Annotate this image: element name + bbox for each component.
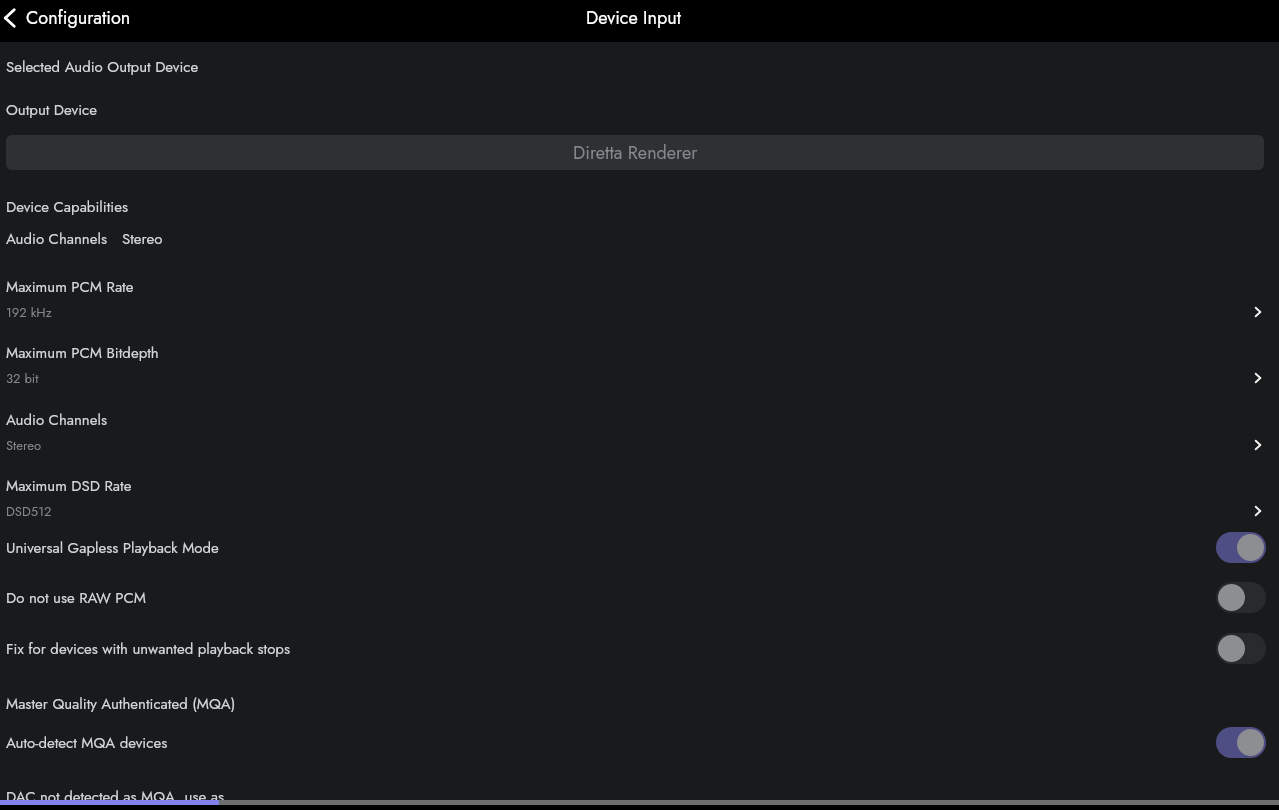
staticText: DSD512 (6, 502, 52, 521)
staticText: Selected Audio Output Device (6, 56, 199, 78)
staticText: Output Device (6, 99, 97, 121)
staticText: DAC not detected as MQA, use as (6, 786, 224, 808)
staticText: 192 kHz (6, 303, 52, 322)
staticText: Device Capabilities (6, 196, 128, 218)
staticText: Fix for devices with unwanted playback s… (6, 638, 290, 660)
staticText: Maximum PCM Bitdepth (6, 342, 159, 364)
button[interactable]: Enabled (1216, 727, 1266, 758)
button[interactable]: Do not use RAW PCM (0, 575, 1279, 619)
staticText: Stereo (122, 228, 163, 250)
button[interactable]: Universal Gapless Playback Mode (0, 525, 1279, 569)
staticText: Maximum PCM Rate (6, 276, 134, 298)
button[interactable]: Diretta Renderer (6, 135, 1264, 170)
staticText: Audio Channels (6, 228, 107, 250)
staticText: Auto-detect MQA devices (6, 732, 168, 754)
button[interactable]: Audio Channels (0, 399, 1279, 466)
button[interactable]: Enabled (1216, 532, 1266, 563)
staticText: Maximum DSD Rate (6, 475, 132, 497)
staticText: Device Input (586, 5, 682, 31)
staticText: Stereo (6, 436, 41, 455)
button[interactable]: Maximum PCM Bitdepth (0, 332, 1279, 399)
staticText: Configuration (26, 5, 131, 31)
staticText: Master Quality Authenticated (MQA) (6, 693, 236, 715)
button[interactable]: Back (0, 1, 26, 35)
staticText: Universal Gapless Playback Mode (6, 537, 219, 559)
button[interactable]: Fix for devices with unwanted playback s… (0, 626, 1279, 670)
button[interactable]: Maximum DSD Rate (0, 465, 1279, 532)
button[interactable]: Disabled (1216, 633, 1266, 664)
button[interactable]: Auto-detect MQA devices (0, 720, 1279, 764)
staticText: Audio Channels (6, 409, 107, 431)
staticText: Do not use RAW PCM (6, 587, 146, 609)
button[interactable]: Maximum PCM Rate (0, 266, 1279, 333)
button[interactable]: Audio Channels (0, 224, 1279, 254)
button[interactable]: Disabled (1216, 582, 1266, 613)
staticText: 32 bit (6, 369, 39, 388)
staticText: Diretta Renderer (573, 140, 698, 166)
